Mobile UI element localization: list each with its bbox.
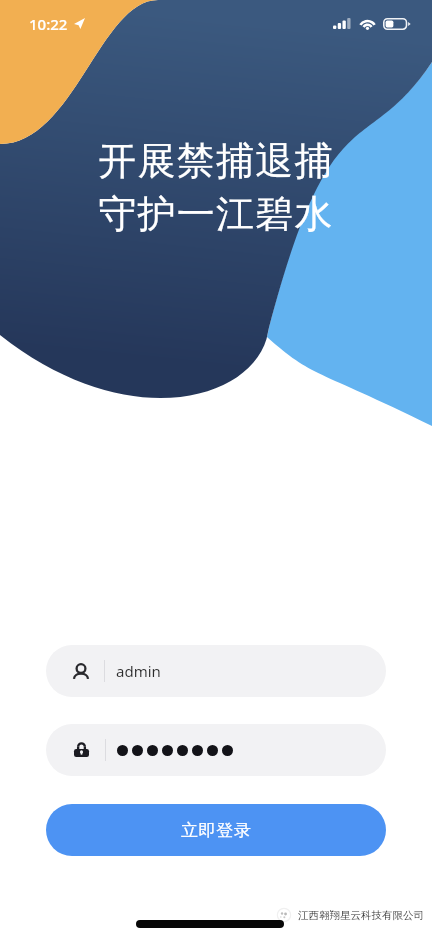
staticText: 立即登录 — [181, 820, 252, 841]
staticText: 10:22 — [29, 14, 68, 34]
staticText: 江西翱翔星云科技有限公司 — [298, 909, 424, 922]
staticText: admin — [116, 661, 161, 681]
button[interactable] — [46, 724, 386, 776]
button[interactable]: 立即登录 — [46, 804, 386, 856]
staticText: 守护一江碧水 — [98, 190, 334, 238]
button[interactable]: admin — [46, 645, 386, 697]
staticText: 开展禁捕退捕 — [98, 137, 334, 185]
